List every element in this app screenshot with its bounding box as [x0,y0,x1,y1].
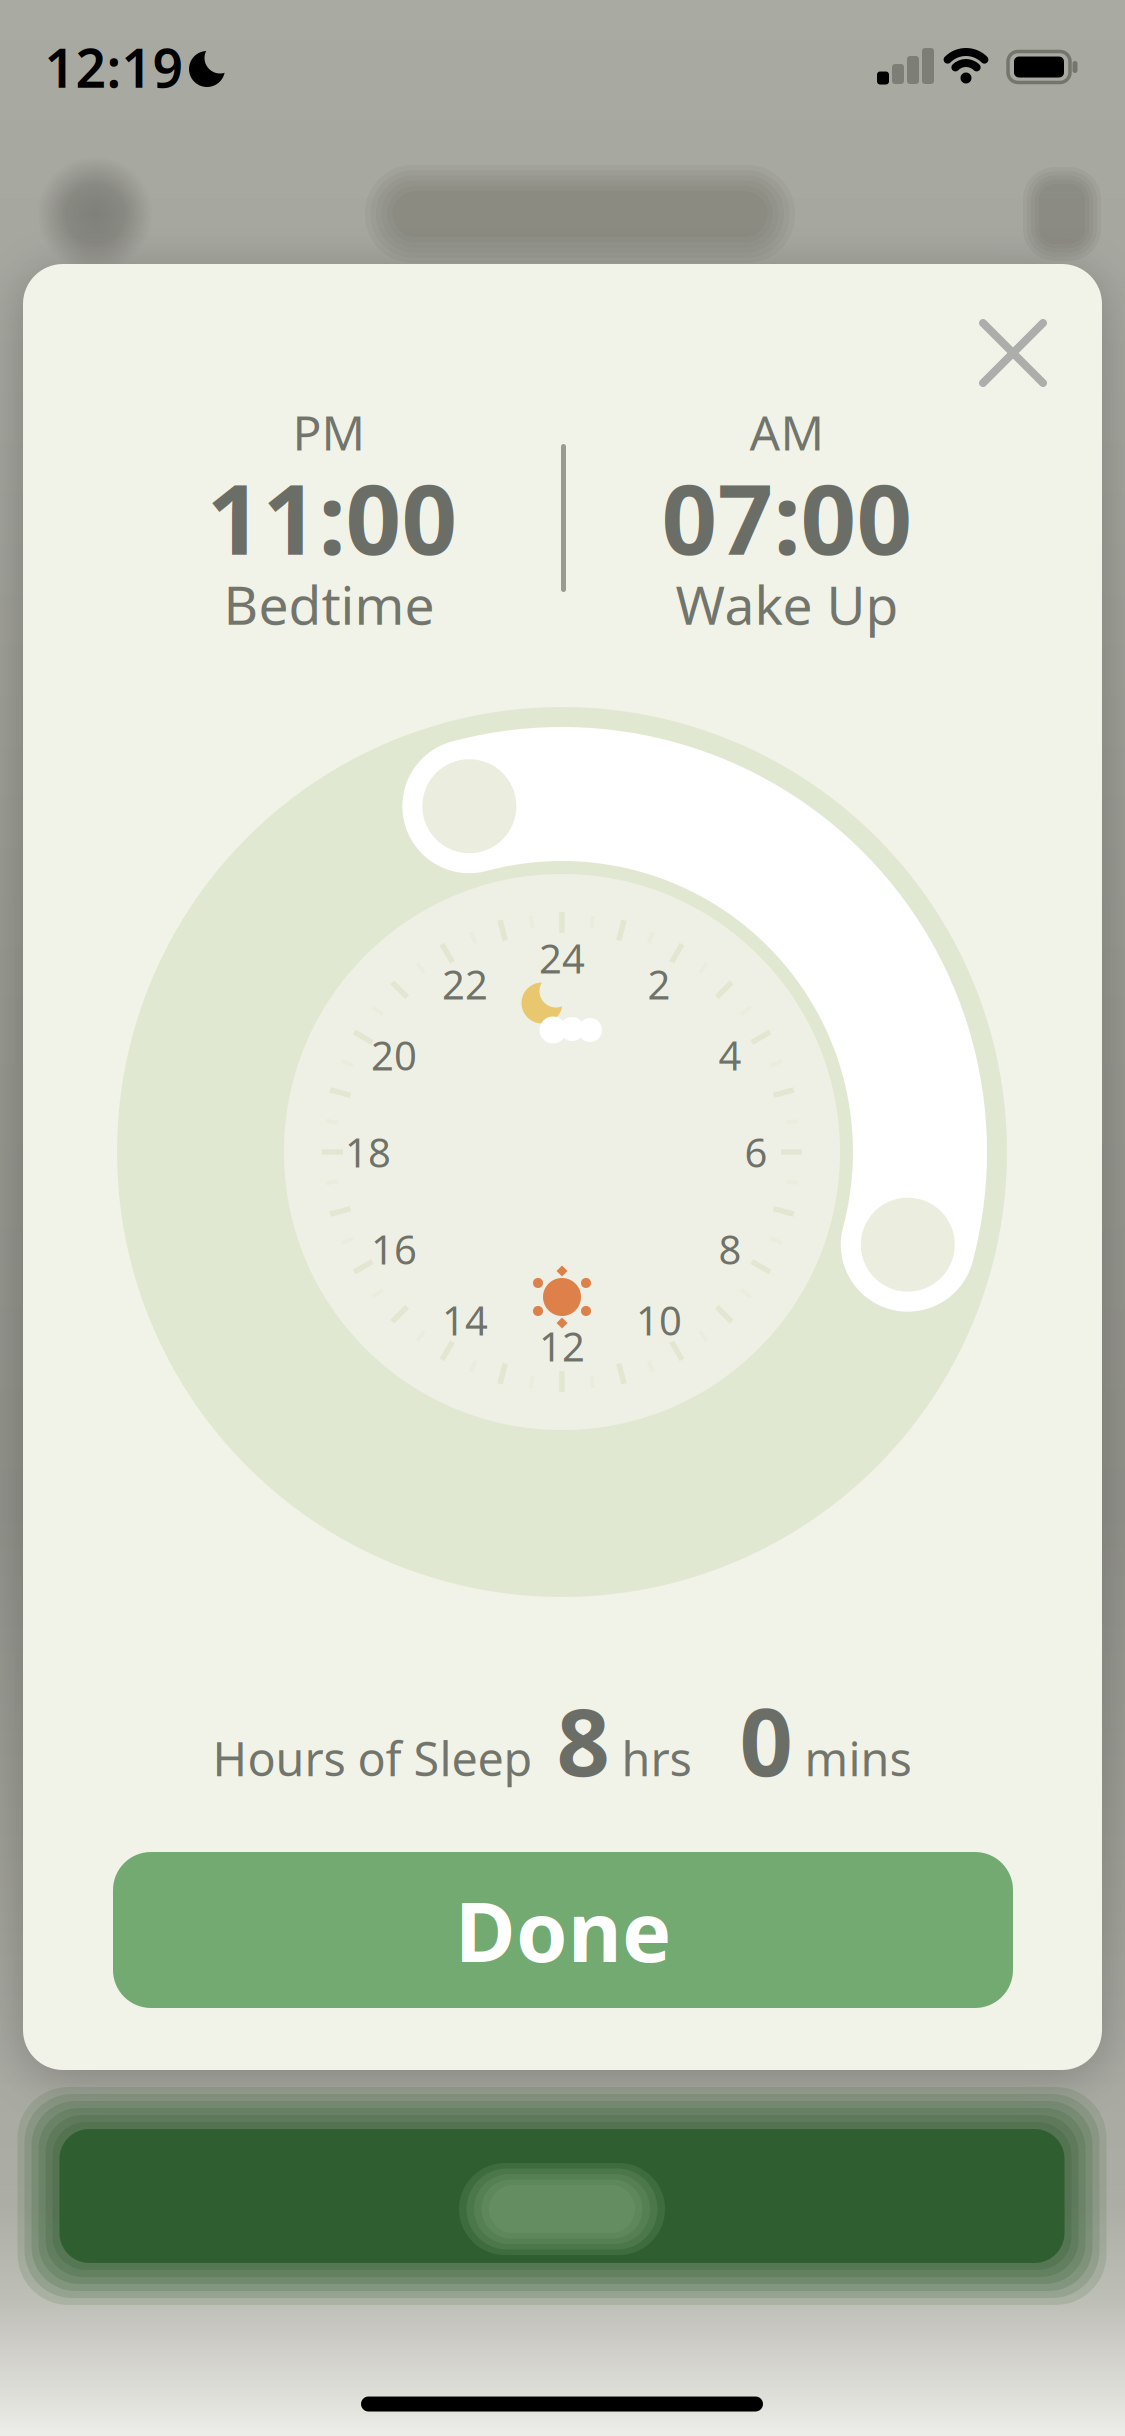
staticText: Wake Up [675,569,898,639]
staticText: 10 [636,1293,682,1346]
staticText: mins [792,1727,911,1789]
staticText: 18 [345,1125,391,1178]
staticText: 22 [442,957,488,1010]
staticText: 6 [744,1125,767,1178]
staticText: 14 [442,1293,488,1346]
staticText: Hours of Sleep [212,1727,532,1789]
staticText: 07:00 [661,452,912,582]
staticText: 0 [691,1678,792,1802]
staticText: 11:00 [206,452,457,582]
staticText: 20 [371,1028,417,1081]
staticText: AM [749,400,824,464]
staticText: Done [455,1875,671,1985]
button[interactable]: Bedtime handle [422,759,516,853]
staticText: 12 [539,1319,585,1372]
staticText: 4 [718,1028,741,1081]
button[interactable]: Done [113,1852,1013,2008]
staticText: PM [292,400,365,464]
button[interactable]: Wake up handle [861,1198,955,1292]
staticText: 12:19 [44,32,183,102]
staticText: 8 [718,1222,741,1275]
staticText: 16 [371,1222,417,1275]
staticText: 24 [539,931,585,984]
staticText: 2 [647,957,670,1010]
staticText: Bedtime [223,569,434,639]
staticText: 8 [532,1678,609,1802]
button[interactable]: Done [17,2098,1107,2294]
staticText: hrs [609,1727,691,1789]
button[interactable]: Close [963,303,1063,403]
